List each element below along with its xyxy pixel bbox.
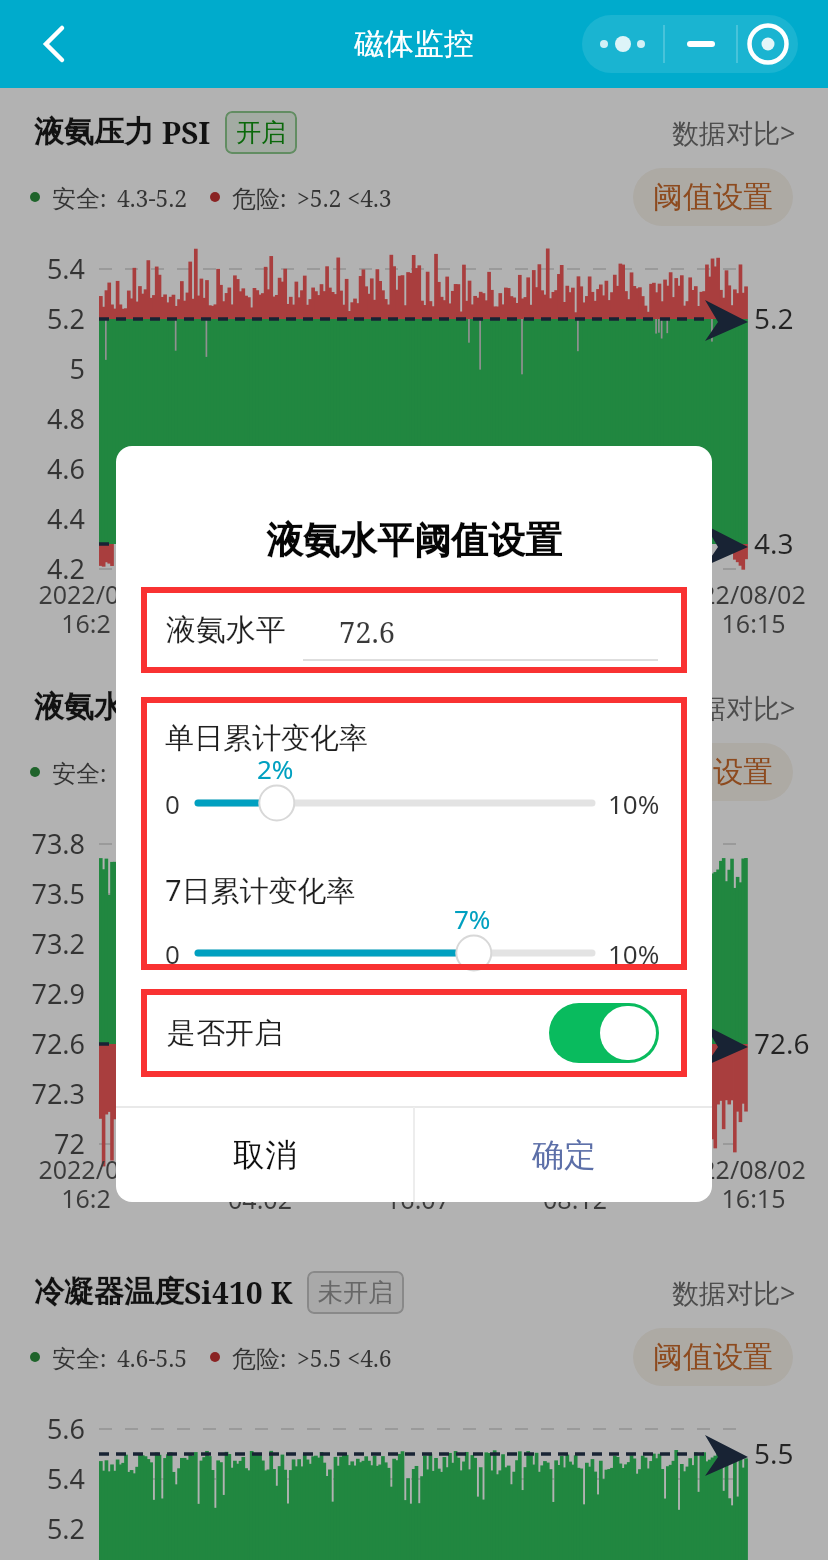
- staticText: 73.2: [0, 925, 85, 962]
- button[interactable]: 取消: [116, 1107, 413, 1202]
- button[interactable]: 数据对比>: [670, 114, 794, 151]
- staticText: >5.2 <4.3: [297, 182, 392, 213]
- staticText: 72.6-73.8: [117, 757, 213, 788]
- staticText: 单日累计变化率: [165, 720, 368, 757]
- button[interactable]: Enable threshold: [549, 1003, 659, 1063]
- staticText: 危险:: [257, 756, 312, 789]
- staticText: 4.4: [0, 500, 85, 537]
- staticText: 7%: [454, 901, 491, 936]
- staticText: 5.4: [0, 250, 85, 287]
- staticText: 72.9: [0, 975, 85, 1012]
- staticText: 2%: [257, 751, 294, 786]
- staticText: 72.3: [0, 1075, 85, 1112]
- staticText: 10%: [608, 936, 660, 971]
- staticText: 5.2: [0, 300, 85, 337]
- button[interactable]: Back: [26, 16, 82, 72]
- button[interactable]: Record: [738, 15, 798, 73]
- staticText: 73.5: [0, 875, 85, 912]
- button[interactable]: 阈值设置: [633, 1328, 793, 1386]
- staticText: 危险:: [232, 1341, 287, 1374]
- staticText: 液氨水平阈值设置: [116, 517, 712, 564]
- button[interactable]: 确定: [415, 1107, 712, 1202]
- staticText: 5.5: [754, 1434, 794, 1472]
- staticText: 72: [0, 1125, 85, 1162]
- button[interactable]: 数据对比>: [670, 1274, 794, 1311]
- staticText: 5.2: [754, 299, 794, 337]
- staticText: 4.3-5.2: [117, 182, 188, 213]
- staticText: 4.2: [0, 550, 85, 587]
- staticText: 72.6: [754, 1024, 810, 1062]
- staticText: 液氨压力: [34, 113, 154, 151]
- staticText: 4.6-5.5: [117, 1342, 188, 1373]
- staticText: 5.2: [0, 1510, 85, 1547]
- staticText: 阈值设置: [653, 753, 773, 791]
- staticText: 安全:: [52, 181, 107, 214]
- staticText: 4.6: [0, 450, 85, 487]
- button[interactable]: 7日累计变化率: [198, 933, 592, 973]
- staticText: 22/08/02 16:15: [701, 577, 806, 640]
- button[interactable]: 开启: [225, 111, 297, 154]
- staticText: 72.6: [0, 1025, 85, 1062]
- staticText: 阈值设置: [653, 1338, 773, 1376]
- staticText: 磁体监控: [354, 25, 474, 63]
- staticText: 确定: [532, 1135, 596, 1175]
- staticText: 是否开启: [167, 1015, 283, 1052]
- staticText: 2022/07 16:2: [38, 1152, 134, 1215]
- staticText: 阈值设置: [653, 178, 773, 216]
- button[interactable]: 开启: [168, 686, 240, 729]
- button[interactable]: 是否开启: [141, 989, 687, 1077]
- staticText: 未开启: [318, 1277, 393, 1308]
- button[interactable]: 阈值设置: [633, 743, 793, 801]
- staticText: 72.6: [339, 612, 395, 651]
- staticText: 0: [165, 936, 180, 971]
- staticText: 22/08/02 16:15: [701, 1152, 806, 1215]
- staticText: 5.4: [0, 1460, 85, 1497]
- staticText: 液氨水平: [34, 688, 154, 726]
- staticText: PSI: [154, 112, 211, 153]
- staticText: Si410 K: [184, 1272, 293, 1313]
- staticText: 0: [165, 786, 180, 821]
- staticText: 危险:: [232, 181, 287, 214]
- staticText: 取消: [233, 1135, 297, 1175]
- button[interactable]: 阈值设置: [633, 168, 793, 226]
- button[interactable]: 数据对比>: [670, 689, 794, 726]
- staticText: 04:02: [228, 1182, 292, 1216]
- staticText: 开启: [236, 117, 286, 148]
- staticText: >5.5 <4.6: [297, 1342, 392, 1373]
- button[interactable]: Minimize: [665, 15, 736, 73]
- staticText: 5: [0, 350, 85, 387]
- staticText: 液氨水平: [166, 611, 286, 649]
- staticText: 5.6: [0, 1410, 85, 1447]
- staticText: 冷凝器温度: [34, 1273, 184, 1311]
- staticText: 安全:: [52, 1341, 107, 1374]
- staticText: 4.3: [754, 524, 794, 562]
- staticText: 08:12: [543, 1182, 607, 1216]
- button[interactable]: 液氨水平: [141, 587, 687, 673]
- staticText: 2022/07 16:2: [38, 577, 134, 640]
- staticText: 10%: [608, 786, 660, 821]
- staticText: 7日累计变化率: [165, 870, 356, 910]
- button[interactable]: 未开启: [307, 1271, 404, 1314]
- staticText: 4.8: [0, 400, 85, 437]
- button[interactable]: 单日累计变化率: [198, 783, 592, 823]
- staticText: 安全:: [52, 756, 107, 789]
- button[interactable]: More: [582, 15, 663, 73]
- staticText: 73.8: [0, 825, 85, 862]
- staticText: 16:07: [386, 1182, 450, 1216]
- staticText: 开启: [179, 692, 229, 723]
